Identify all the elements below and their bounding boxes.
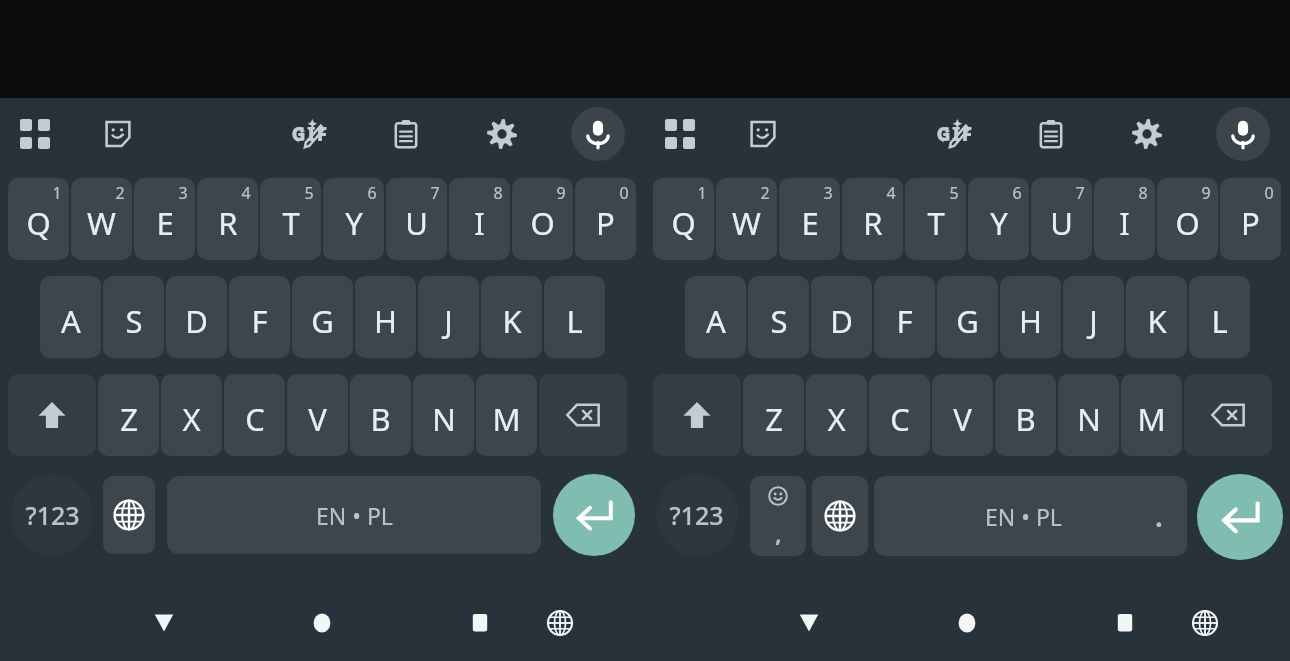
button[interactable]: V [932, 374, 993, 456]
button[interactable]: I [449, 178, 510, 260]
button[interactable]: ?123 [8, 474, 96, 556]
button[interactable]: Home [943, 585, 991, 661]
button[interactable]: N [413, 374, 474, 456]
button[interactable]: Widgets [0, 98, 70, 170]
button[interactable]: Q [8, 178, 69, 260]
button[interactable]: S [748, 276, 809, 358]
button[interactable]: K [481, 276, 542, 358]
button[interactable]: Voice input [571, 107, 625, 161]
button[interactable]: T [260, 178, 321, 260]
staticText: 5 [949, 182, 959, 204]
button[interactable]: M [1121, 374, 1182, 456]
button[interactable]: Stickers [70, 98, 166, 170]
button[interactable]: W [71, 178, 132, 260]
button[interactable]: L [544, 276, 605, 358]
button[interactable]: S [103, 276, 164, 358]
button[interactable]: Home [298, 585, 346, 661]
button[interactable]: I [1094, 178, 1155, 260]
button[interactable]: Y [323, 178, 384, 260]
button[interactable]: Change language [812, 476, 868, 556]
button[interactable]: EN • PL [167, 476, 541, 554]
button[interactable]: Q [653, 178, 714, 260]
button[interactable]: A [40, 276, 101, 358]
button[interactable]: T [905, 178, 966, 260]
button[interactable]: Emoji and comma [750, 476, 806, 556]
button[interactable]: B [350, 374, 411, 456]
button[interactable]: N [1058, 374, 1119, 456]
button[interactable]: Settings [454, 98, 550, 170]
button[interactable]: Enter [553, 474, 635, 556]
button[interactable]: Shift [8, 374, 96, 456]
button[interactable]: Voice input [1216, 107, 1270, 161]
button[interactable]: R [197, 178, 258, 260]
button[interactable]: F [874, 276, 935, 358]
button[interactable]: W [716, 178, 777, 260]
button[interactable]: Widgets [645, 98, 715, 170]
button[interactable]: Change language [103, 476, 155, 554]
button[interactable]: Settings [1099, 98, 1195, 170]
button[interactable]: J [418, 276, 479, 358]
button[interactable]: Enter [1197, 474, 1283, 560]
staticText: GIF [936, 121, 974, 147]
staticText: 1 [697, 182, 707, 204]
button[interactable]: Backspace [539, 374, 627, 456]
button[interactable]: Z [743, 374, 804, 456]
button[interactable]: P [575, 178, 636, 260]
button[interactable]: A [685, 276, 746, 358]
button[interactable]: Clipboard [358, 98, 454, 170]
staticText: S [770, 300, 788, 342]
staticText: C [245, 398, 265, 440]
button[interactable]: Hide keyboard [140, 585, 188, 661]
button[interactable]: H [1000, 276, 1061, 358]
button[interactable]: D [811, 276, 872, 358]
staticText: D [830, 300, 853, 342]
button[interactable]: Edit [262, 98, 358, 170]
button[interactable]: D [166, 276, 227, 358]
button[interactable]: L [1189, 276, 1250, 358]
button[interactable]: K [1126, 276, 1187, 358]
staticText: 5 [304, 182, 314, 204]
button[interactable]: Backspace [1184, 374, 1272, 456]
button[interactable]: H [355, 276, 416, 358]
button[interactable]: B [995, 374, 1056, 456]
button[interactable]: X [161, 374, 222, 456]
button[interactable]: V [287, 374, 348, 456]
button[interactable]: G [937, 276, 998, 358]
button[interactable]: C [224, 374, 285, 456]
button[interactable]: J [1063, 276, 1124, 358]
button[interactable]: Hide keyboard [785, 585, 833, 661]
button[interactable]: U [1031, 178, 1092, 260]
button[interactable]: R [842, 178, 903, 260]
button[interactable]: M [476, 374, 537, 456]
button[interactable]: Z [98, 374, 159, 456]
staticText: F [251, 300, 268, 342]
button[interactable]: E [134, 178, 195, 260]
button[interactable]: Change language [536, 585, 584, 661]
button[interactable]: P [1220, 178, 1281, 260]
button[interactable]: Change language [1181, 585, 1229, 661]
button[interactable]: Clipboard [1003, 98, 1099, 170]
button[interactable]: Recents [1101, 585, 1149, 661]
button[interactable]: Y [968, 178, 1029, 260]
button[interactable]: Recents [456, 585, 504, 661]
button[interactable]: O [1157, 178, 1218, 260]
button[interactable]: . [1131, 476, 1187, 556]
button[interactable]: Shift [653, 374, 741, 456]
button[interactable]: G [292, 276, 353, 358]
button[interactable]: C [869, 374, 930, 456]
staticText: N [1077, 398, 1101, 440]
staticText: M [1137, 398, 1166, 440]
button[interactable]: Edit [907, 98, 1003, 170]
button[interactable]: E [779, 178, 840, 260]
button[interactable]: ?123 [649, 474, 744, 556]
button[interactable]: EN • PL [874, 476, 1172, 556]
button[interactable]: U [386, 178, 447, 260]
staticText: 9 [1201, 182, 1211, 204]
button[interactable]: Stickers [715, 98, 811, 170]
button[interactable]: X [806, 374, 867, 456]
button[interactable]: F [229, 276, 290, 358]
staticText: 8 [1138, 182, 1148, 204]
button[interactable]: O [512, 178, 573, 260]
